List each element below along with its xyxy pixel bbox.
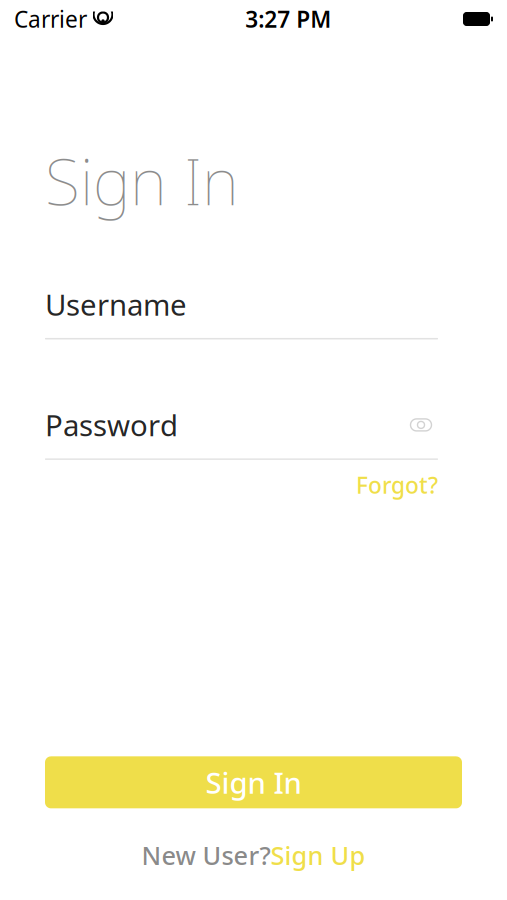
button[interactable]: Sign Up [270, 838, 365, 872]
staticText: Username [45, 285, 187, 324]
staticText: Sign Up [270, 838, 365, 872]
button[interactable]: Show password [404, 412, 438, 438]
staticText: Password [45, 405, 178, 444]
staticText: Forgot? [356, 470, 438, 500]
staticText: Carrier [14, 4, 87, 34]
staticText: 3:27 PM [245, 4, 331, 34]
staticText: New User? [141, 838, 270, 872]
staticText: Sign In [45, 138, 239, 223]
button[interactable]: Sign In [45, 756, 462, 808]
staticText: Sign In [205, 763, 301, 802]
button[interactable]: Forgot? [356, 470, 438, 500]
